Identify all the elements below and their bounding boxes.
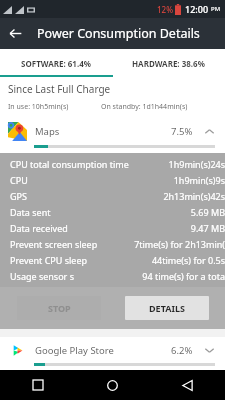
button[interactable]: SOFTWARE: 61.4% [0,49,112,77]
button[interactable]: DETAILS [125,296,209,320]
staticText: 5.69 MB [190,206,225,218]
button[interactable]: STOP [17,296,101,320]
staticText: PM [211,5,221,13]
staticText: 9.47 MB [190,222,225,234]
staticText: In use: 10h5min(s) [8,102,101,112]
staticText: SOFTWARE: 61.4% [21,58,91,69]
staticText: CPU total consumption time [10,158,129,170]
staticText: Power Consumption Details [37,25,200,42]
staticText: CPU [10,174,28,186]
button[interactable]: Back [150,370,225,400]
staticText: Google Play Store [35,344,171,357]
staticText: Usage sensor s [10,270,74,282]
other: Expand [201,342,217,358]
staticText: STOP [48,302,71,314]
button[interactable]: Google Play Store [0,337,225,370]
staticText: Prevent CPU sleep [10,254,88,266]
staticText: On standby: 1d1h44min(s) [101,102,217,112]
staticText: 94 time(s) for a tota [142,270,225,282]
button[interactable]: Back [0,18,31,49]
button[interactable]: Recents [0,370,75,400]
staticText: 6.2% [171,344,193,357]
staticText: Data received [10,222,68,234]
staticText: GPS [10,190,27,202]
staticText: DETAILS [149,302,185,314]
button[interactable]: HARDWARE: 38.6% [112,49,225,77]
staticText: 44time(s) for 0.5s [151,254,225,266]
staticText: Maps [35,125,171,138]
staticText: Prevent screen sleep [10,238,98,250]
staticText: HARDWARE: 38.6% [132,58,205,69]
staticText: 7time(s) for 2h13min( [134,238,225,250]
staticText: 2h13min(s)42s [163,190,225,202]
other: Collapse [201,123,217,139]
staticText: 1h9min(s)9s [173,174,225,186]
button[interactable]: Home [75,370,150,400]
staticText: Since Last Full Charge [8,82,111,96]
staticText: 7.5% [171,125,193,138]
button[interactable]: Maps [0,117,225,153]
staticText: 12:00 [185,3,209,15]
staticText: 12% [157,4,173,15]
staticText: Data sent [10,206,51,218]
staticText: 1h9min(s)24s [168,158,225,170]
